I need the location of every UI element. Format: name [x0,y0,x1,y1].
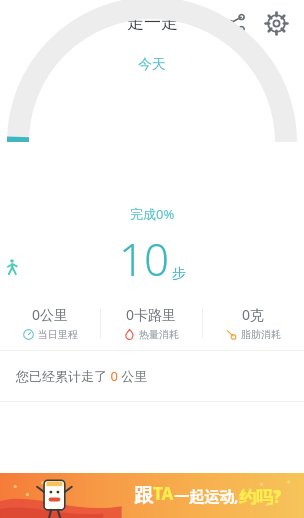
staticText: 您已经累计走了 0 公里 [16,367,148,385]
button[interactable]: 0卡路里 [101,295,202,350]
staticText: 10 [119,229,170,289]
staticText: 0公里 [32,305,69,324]
button[interactable]: Share [216,3,256,43]
staticText: 0克 [242,305,265,324]
staticText: 热量消耗 [139,328,179,341]
staticText: 当日里程 [38,328,78,341]
staticText: 0卡路里 [126,305,177,324]
staticText: 约吗? [239,485,282,508]
staticText: 脂肪消耗 [241,328,281,341]
button[interactable]: 0公里 [0,295,100,350]
button[interactable]: 0克 [203,295,304,350]
button[interactable]: 跟TA一起运动约吗 [0,473,304,518]
button[interactable]: Settings [256,3,296,43]
button[interactable]: 今天 [120,50,184,80]
staticText: 步 [172,265,186,283]
staticText: 完成0% [130,205,175,223]
staticText: 跟 [134,484,153,508]
staticText: 一起运动, [174,486,239,506]
staticText: TA [153,482,174,505]
staticText: 今天 [138,56,166,74]
button[interactable]: 您已经累计走了 0 公里 [0,351,304,401]
staticText: 走一走 [127,12,178,33]
